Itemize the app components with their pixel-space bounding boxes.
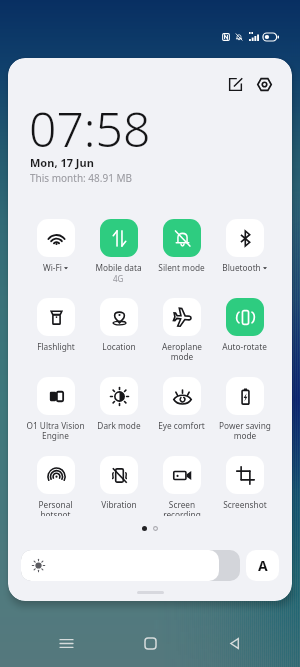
- staticText: This month: 48.91 MB: [30, 171, 133, 185]
- staticText: Location: [102, 341, 136, 352]
- button[interactable]: Flashlight: [24, 298, 87, 352]
- button[interactable]: Brightness: [21, 550, 240, 581]
- button[interactable]: Personal hotspot: [24, 456, 87, 516]
- staticText: Mon, 17 Jun: [30, 155, 94, 170]
- staticText: 07:58: [29, 96, 151, 161]
- button[interactable]: Back: [218, 627, 250, 659]
- button[interactable]: Wi-Fi: [24, 219, 87, 273]
- staticText: O1 Ultra Vision Engine: [26, 420, 85, 441]
- staticText: Power saving mode: [219, 420, 271, 441]
- staticText: Vibration: [101, 499, 137, 510]
- button[interactable]: Screen recording: [150, 456, 213, 516]
- staticText: Bluetooth: [222, 262, 261, 273]
- staticText: Dark mode: [97, 420, 141, 431]
- button[interactable]: Mobile data: [87, 219, 150, 284]
- button[interactable]: Dark mode: [87, 377, 150, 431]
- staticText: A: [258, 556, 268, 575]
- button[interactable]: Screenshot: [213, 456, 276, 510]
- staticText: Wi-Fi: [43, 262, 62, 273]
- staticText: Aeroplane mode: [162, 341, 202, 362]
- button[interactable]: Vibration: [87, 456, 150, 510]
- staticText: Flashlight: [37, 341, 75, 352]
- button[interactable]: Location: [87, 298, 150, 352]
- button[interactable]: Silent mode: [150, 219, 213, 273]
- staticText: Eye comfort: [158, 420, 205, 431]
- button[interactable]: Home: [134, 627, 166, 659]
- button[interactable]: O1 Ultra Vision Engine: [24, 377, 87, 441]
- staticText: Mobile data: [95, 262, 142, 273]
- button[interactable]: Bluetooth: [213, 219, 276, 273]
- button[interactable]: Power saving mode: [213, 377, 276, 441]
- button[interactable]: Aeroplane mode: [150, 298, 213, 362]
- staticText: Personal hotspot: [38, 499, 73, 516]
- button[interactable]: Recents: [50, 627, 82, 659]
- staticText: 4G: [113, 273, 124, 284]
- button[interactable]: Edit: [222, 71, 248, 97]
- button[interactable]: A: [246, 550, 279, 581]
- staticText: Screen recording: [163, 499, 201, 516]
- staticText: Screenshot: [223, 499, 267, 510]
- staticText: Auto-rotate: [222, 341, 267, 352]
- button[interactable]: Auto-rotate: [213, 298, 276, 352]
- button[interactable]: Settings: [251, 71, 277, 97]
- button[interactable]: Eye comfort: [150, 377, 213, 431]
- staticText: Silent mode: [158, 262, 205, 273]
